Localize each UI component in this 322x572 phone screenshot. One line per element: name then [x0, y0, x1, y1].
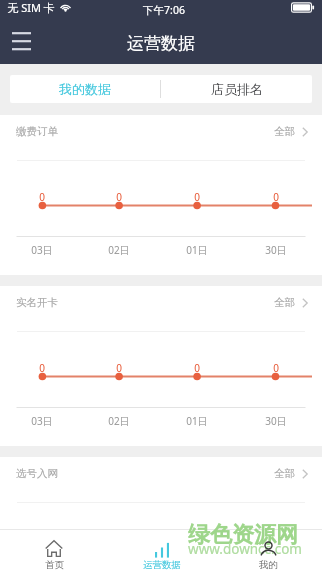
staticText: 全部: [274, 467, 295, 480]
staticText: 0: [273, 190, 279, 204]
staticText: 30日: [265, 243, 287, 257]
staticText: 03日: [31, 243, 53, 257]
button[interactable]: 实名开卡: [0, 286, 322, 331]
staticText: 03日: [31, 414, 53, 428]
button[interactable]: 我的: [215, 530, 322, 572]
staticText: 运营数据: [143, 559, 181, 571]
staticText: 0: [39, 361, 45, 375]
staticText: 02日: [108, 414, 130, 428]
staticText: 01日: [186, 243, 208, 257]
button[interactable]: 我的数据: [10, 75, 160, 103]
staticText: 我的: [259, 559, 278, 571]
button[interactable]: 运营数据: [108, 530, 215, 572]
staticText: 首页: [45, 559, 64, 571]
staticText: 02日: [108, 243, 130, 257]
staticText: 我的数据: [59, 81, 111, 97]
staticText: 0: [273, 361, 279, 375]
staticText: 下午7:06: [143, 3, 185, 17]
staticText: 01日: [186, 414, 208, 428]
staticText: 全部: [274, 296, 295, 309]
staticText: 全部: [274, 125, 295, 138]
staticText: 0: [116, 190, 122, 204]
button[interactable]: 缴费订单: [0, 115, 322, 160]
staticText: 0: [194, 190, 200, 204]
staticText: www.downcc.com: [188, 540, 302, 558]
staticText: 无 SIM 卡: [7, 0, 55, 15]
staticText: 实名开卡: [16, 296, 58, 309]
button[interactable]: 店员排名: [161, 75, 312, 103]
staticText: 运营数据: [127, 33, 195, 54]
staticText: 绿色资源网: [188, 521, 298, 549]
staticText: 0: [273, 532, 279, 546]
staticText: 0: [116, 361, 122, 375]
staticText: 店员排名: [211, 81, 263, 97]
staticText: 30日: [265, 414, 287, 428]
button[interactable]: 选号入网: [0, 457, 322, 502]
staticText: 缴费订单: [16, 125, 58, 138]
staticText: 0: [194, 532, 200, 546]
button[interactable]: 首页: [0, 530, 108, 572]
staticText: 选号入网: [16, 467, 58, 480]
button[interactable]: Menu: [1, 20, 41, 60]
staticText: 0: [39, 190, 45, 204]
staticText: 0: [194, 361, 200, 375]
